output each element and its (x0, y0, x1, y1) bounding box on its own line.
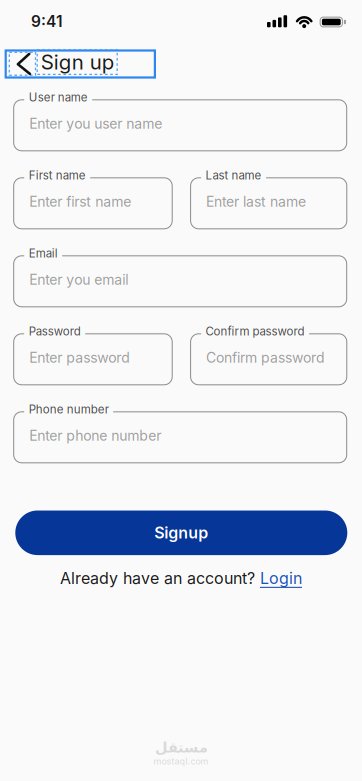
staticText: Enter you email (29, 271, 128, 288)
staticText: Already have an account? (60, 569, 255, 588)
button[interactable]: Last name (190, 171, 347, 229)
staticText: Password (29, 324, 81, 338)
staticText: Enter phone number (29, 427, 161, 444)
staticText: Email (29, 246, 58, 260)
staticText: Enter you user name (29, 115, 162, 132)
button[interactable]: Login (260, 569, 302, 588)
staticText: Confirm password (206, 349, 325, 366)
staticText: First name (29, 168, 86, 182)
button[interactable]: Phone number (13, 405, 347, 463)
button[interactable]: Signup (15, 510, 347, 555)
staticText: Confirm password (206, 324, 305, 338)
staticText: Phone number (29, 402, 109, 416)
staticText: Last name (206, 168, 262, 182)
button[interactable]: First name (13, 171, 173, 229)
button[interactable]: Confirm password (190, 327, 347, 385)
staticText: Enter last name (206, 193, 306, 210)
staticText: Login (260, 569, 302, 588)
staticText: مستقل (154, 739, 207, 756)
staticText: 9:41 (31, 12, 63, 31)
staticText: Enter first name (29, 193, 131, 210)
staticText: Signup (154, 523, 208, 542)
button[interactable]: Password (13, 327, 173, 385)
staticText: Enter password (29, 349, 130, 366)
button[interactable]: User name (13, 93, 347, 151)
staticText: mostaql.com (153, 756, 208, 767)
staticText: User name (29, 90, 88, 104)
button[interactable]: Email (13, 249, 347, 307)
button[interactable] (9, 52, 35, 75)
staticText: Sign up (41, 50, 114, 74)
